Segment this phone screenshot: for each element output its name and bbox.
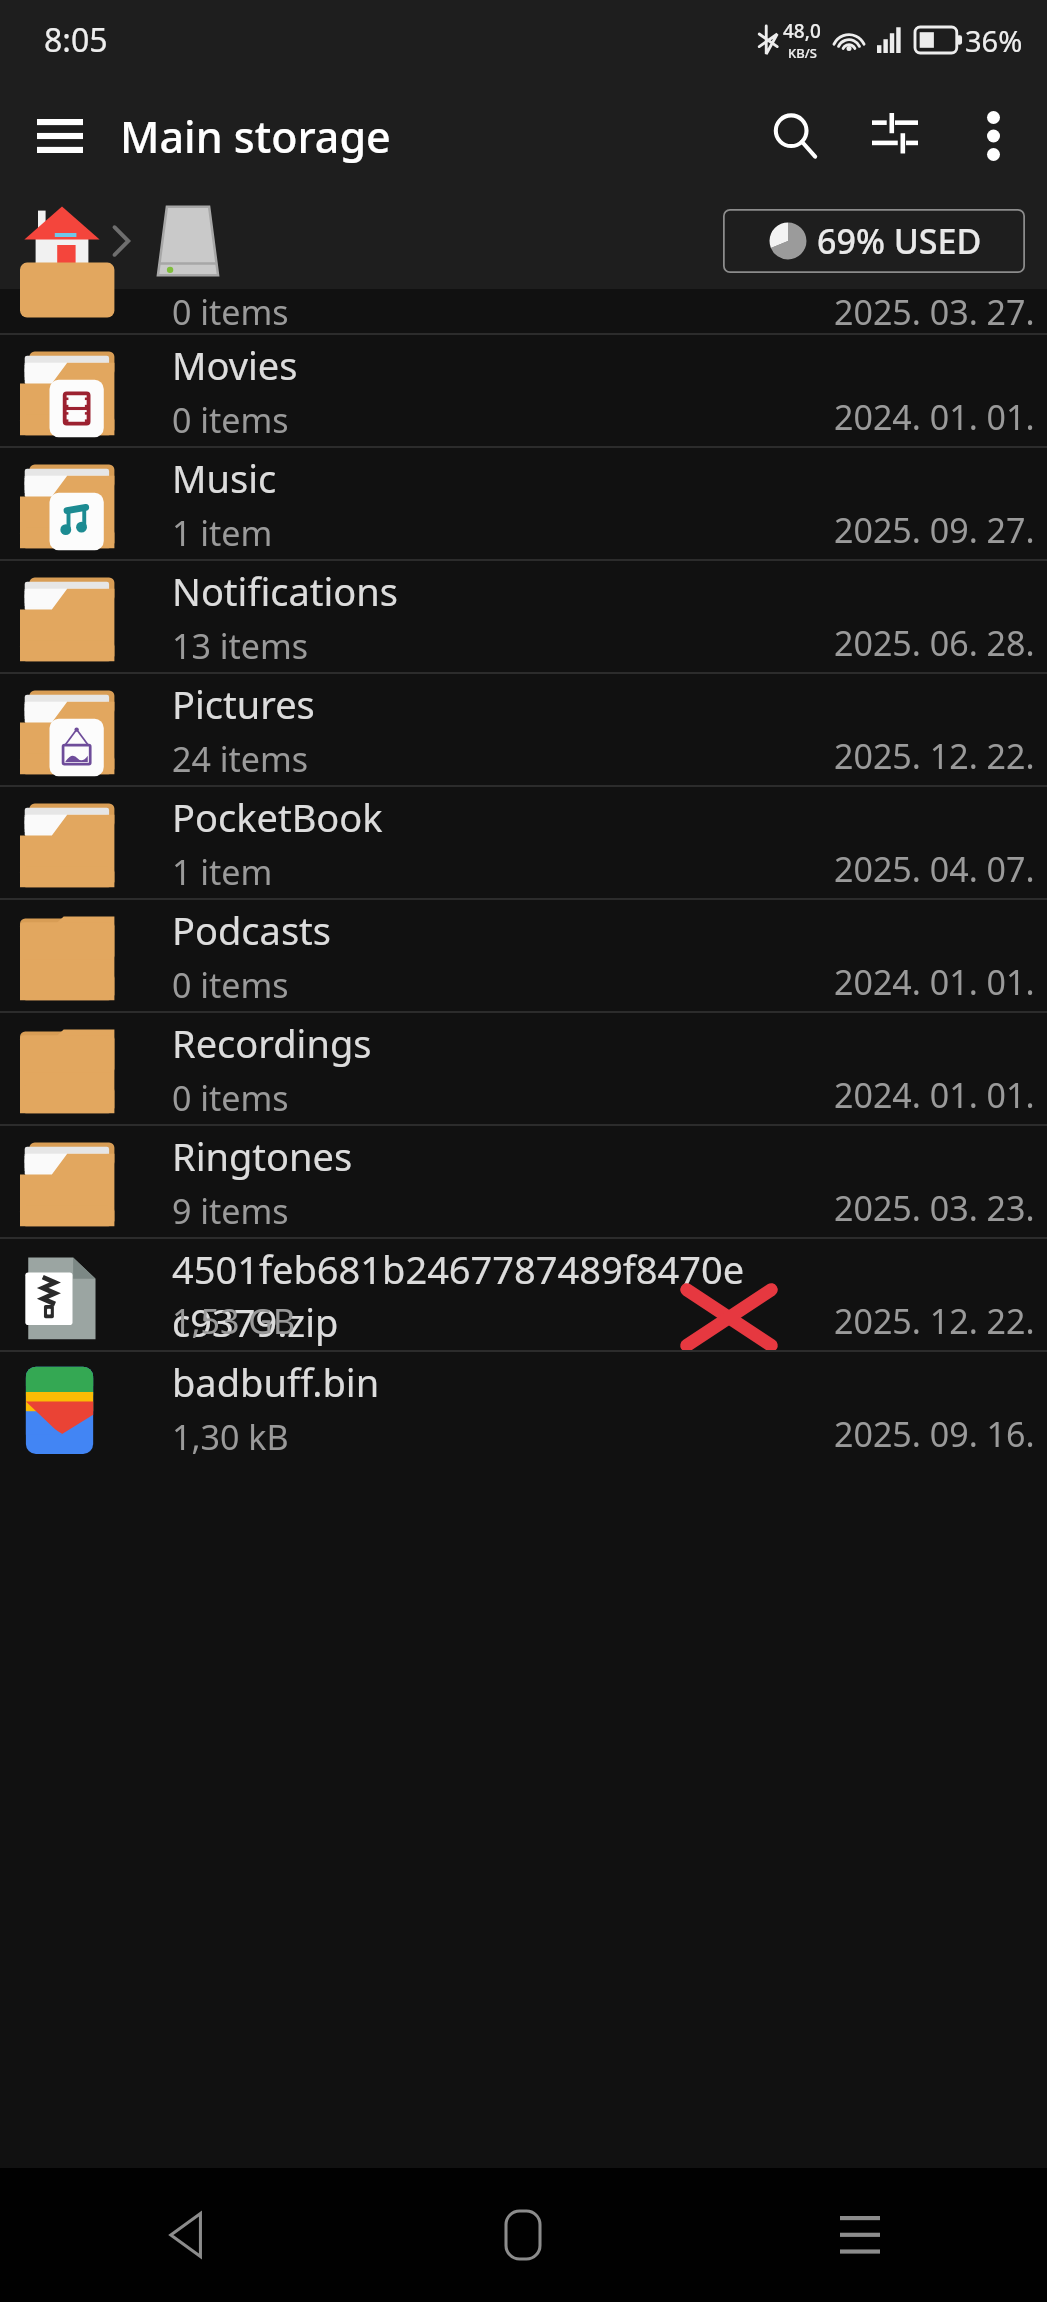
staticText: 1 item: [172, 849, 273, 895]
button[interactable]: Navigation menu: [20, 96, 100, 176]
staticText: Notifications: [172, 565, 399, 617]
staticText: 2025. 12. 22.: [834, 733, 1035, 779]
staticText: 48,0: [783, 18, 821, 44]
staticText: Podcasts: [172, 904, 332, 956]
staticText: Recordings: [172, 1017, 372, 1069]
staticText: 4501feb681b2467787489f8470e: [172, 1243, 745, 1295]
staticText: 1,53 GB: [172, 1298, 296, 1344]
staticText: Ringtones: [172, 1130, 353, 1182]
staticText: 13 items: [172, 623, 309, 669]
staticText: 2025. 09. 27.: [834, 507, 1035, 553]
button[interactable]: Pictures: [0, 674, 1047, 785]
staticText: Pictures: [172, 678, 315, 730]
button[interactable]: Back: [130, 2179, 242, 2291]
staticText: 0 items: [172, 397, 289, 443]
staticText: badbuff.bin: [172, 1356, 380, 1408]
staticText: 69% USED: [817, 218, 982, 264]
staticText: 2024. 01. 01.: [834, 1072, 1035, 1118]
staticText: Main storage: [120, 107, 745, 166]
staticText: 0 items: [172, 289, 289, 333]
button[interactable]: Movies: [0, 335, 1047, 446]
button[interactable]: Podcasts: [0, 900, 1047, 1011]
staticText: 2025. 03. 23.: [834, 1185, 1035, 1231]
staticText: Music: [172, 452, 277, 504]
button[interactable]: PocketBook: [0, 787, 1047, 898]
button[interactable]: Ringtones: [0, 1126, 1047, 1237]
staticText: Movies: [172, 339, 298, 391]
button[interactable]: Home: [467, 2179, 579, 2291]
staticText: 8:05: [44, 18, 108, 62]
button[interactable]: badbuff.bin: [0, 1352, 1047, 1463]
button[interactable]: Recent apps: [804, 2179, 916, 2291]
staticText: 2025. 09. 16.: [834, 1411, 1035, 1457]
button[interactable]: Main storage: [142, 195, 234, 287]
button[interactable]: 69% USED: [723, 209, 1025, 273]
button[interactable]: Music: [0, 448, 1047, 559]
staticText: 2024. 01. 01.: [834, 394, 1035, 440]
button[interactable]: Recordings: [0, 1013, 1047, 1124]
staticText: PocketBook: [172, 791, 383, 843]
staticText: 9 items: [172, 1188, 289, 1234]
button[interactable]: Notifications: [0, 561, 1047, 672]
staticText: 2025. 12. 22.: [834, 1298, 1035, 1344]
staticText: KB/S: [788, 44, 817, 62]
staticText: 2024. 01. 01.: [834, 959, 1035, 1005]
button[interactable]: Search: [745, 86, 845, 186]
staticText: 24 items: [172, 736, 309, 782]
staticText: c9379.zip: [172, 1296, 339, 1348]
button[interactable]: Sort options: [845, 86, 945, 186]
staticText: 1,30 kB: [172, 1414, 289, 1460]
staticText: 0 items: [172, 962, 289, 1008]
button[interactable]: 0 items: [0, 289, 1047, 333]
staticText: 0 items: [172, 1075, 289, 1121]
button[interactable]: Home: [16, 195, 108, 287]
button[interactable]: 4501feb681b2467787489f8470e: [0, 1239, 1047, 1350]
staticText: 2025. 06. 28.: [834, 620, 1035, 666]
staticText: 1 item: [172, 510, 273, 556]
staticText: 2025. 04. 07.: [834, 846, 1035, 892]
staticText: 2025. 03. 27.: [834, 289, 1035, 333]
button[interactable]: More options: [945, 88, 1041, 184]
staticText: 36%: [965, 21, 1023, 60]
